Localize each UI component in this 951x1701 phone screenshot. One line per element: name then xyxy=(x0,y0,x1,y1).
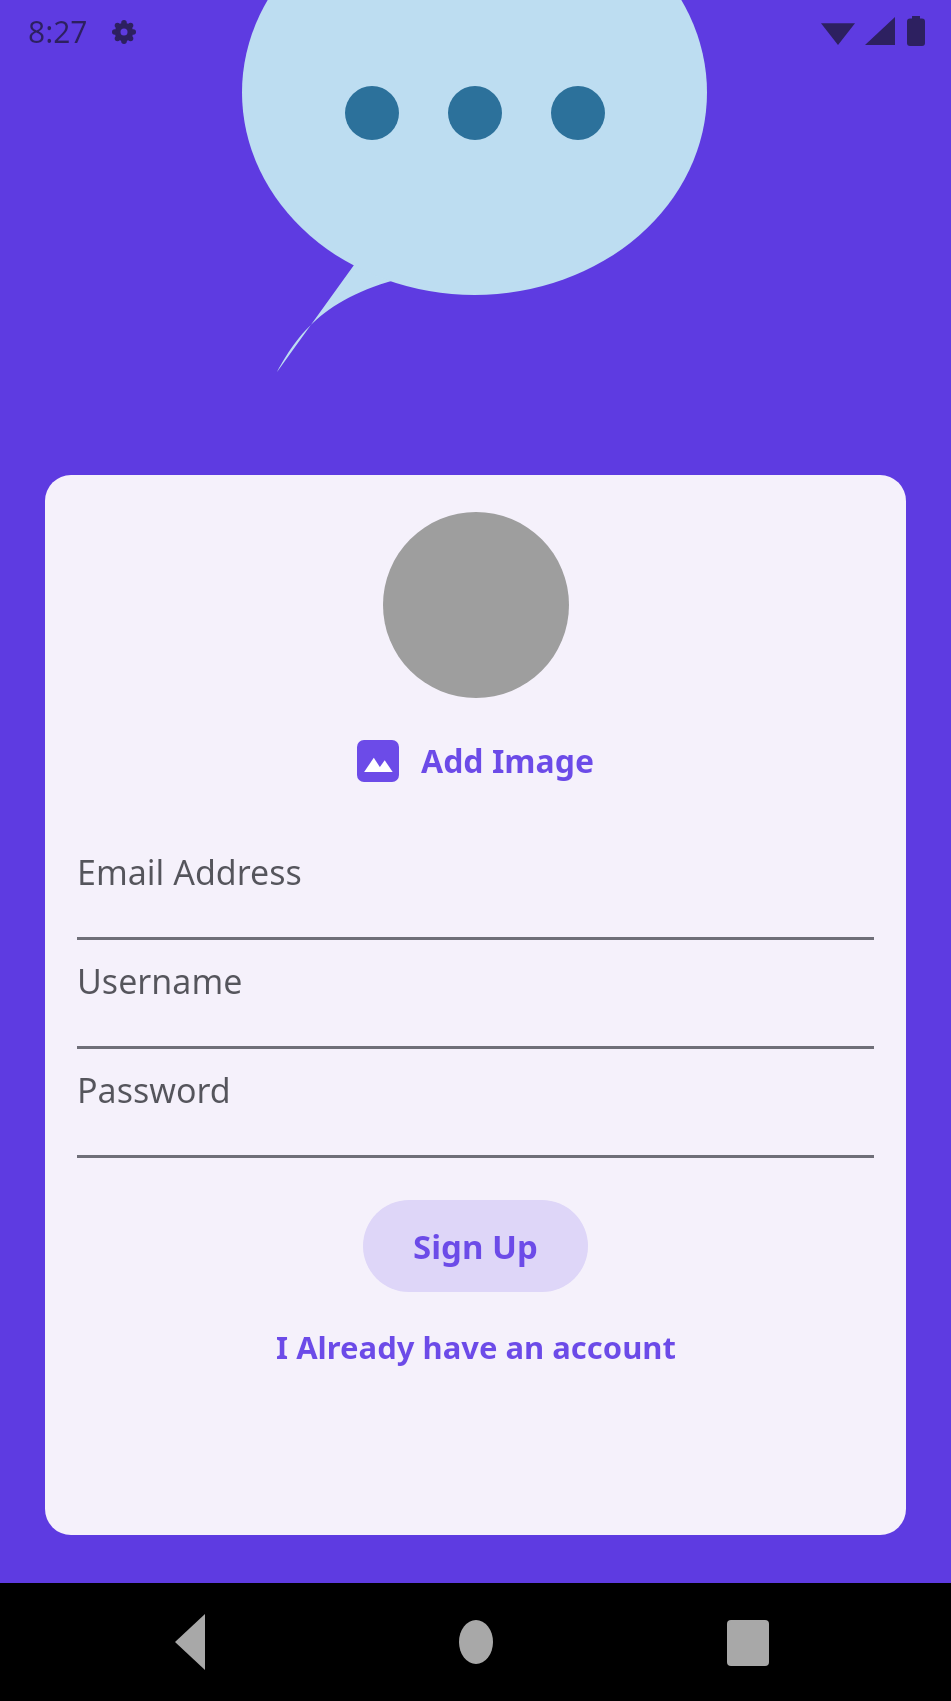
button[interactable]: Password xyxy=(77,1049,874,1158)
staticText: Sign Up xyxy=(413,1224,538,1269)
button[interactable]: I Already have an account xyxy=(262,1318,690,1376)
staticText: I Already have an account xyxy=(276,1326,676,1368)
staticText: Password xyxy=(77,1067,231,1113)
staticText: 8:27 xyxy=(28,11,88,52)
staticText: Username xyxy=(77,958,243,1004)
button[interactable]: Add Image xyxy=(349,735,603,787)
button[interactable]: Sign Up xyxy=(363,1200,588,1292)
staticText: Email Address xyxy=(77,849,302,895)
button[interactable]: Navigation bar xyxy=(0,1583,951,1701)
button[interactable]: Profile photo xyxy=(383,512,569,698)
staticText: Add Image xyxy=(421,739,595,783)
button[interactable]: Email Address xyxy=(77,831,874,940)
button[interactable]: Username xyxy=(77,940,874,1049)
